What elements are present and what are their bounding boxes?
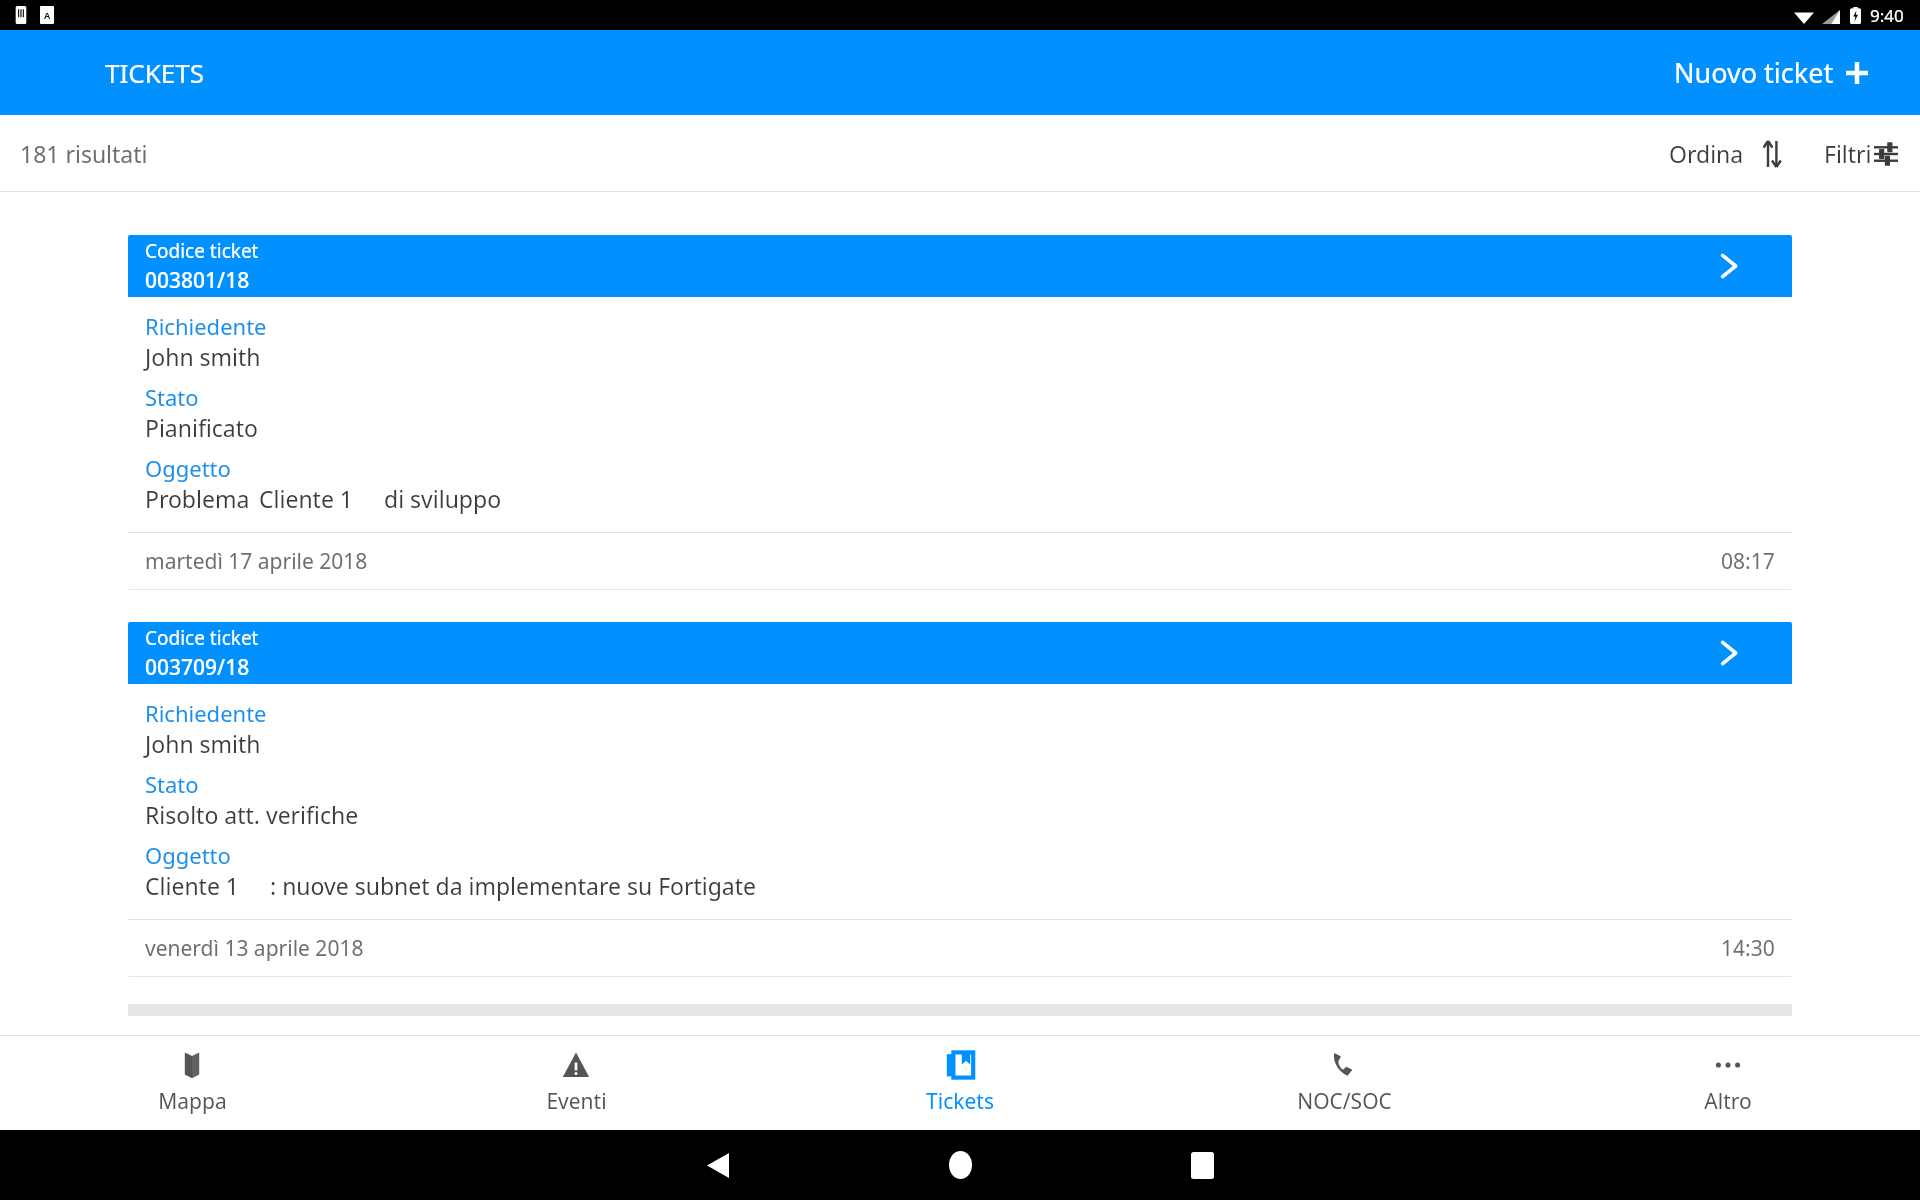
- staticText: Codice ticket: [145, 238, 259, 264]
- button[interactable]: Codice ticket: [128, 235, 1792, 590]
- staticText: Codice ticket: [145, 625, 259, 651]
- staticText: Oggetto: [145, 453, 231, 483]
- button[interactable]: Codice ticket: [128, 622, 1792, 977]
- staticText: Altro: [1704, 1087, 1752, 1116]
- other: Eventi: [561, 1050, 591, 1080]
- staticText: Tickets: [926, 1087, 994, 1116]
- button[interactable]: Tickets: [768, 1036, 1152, 1130]
- staticText: 003709/18: [145, 653, 250, 682]
- button[interactable]: Altro: [1536, 1036, 1920, 1130]
- staticText: Nuovo ticket: [1674, 54, 1834, 91]
- staticText: martedì 17 aprile 2018: [145, 547, 368, 576]
- staticText: Eventi: [546, 1087, 607, 1116]
- staticText: John smith: [145, 341, 261, 372]
- staticText: 08:17: [1721, 547, 1775, 576]
- button[interactable]: Eventi: [384, 1036, 768, 1130]
- button[interactable]: Nuovo ticket: [1674, 54, 1868, 91]
- button[interactable]: Filtri: [1818, 138, 1904, 169]
- staticText: Richiedente: [145, 698, 267, 728]
- other: Mappa: [177, 1050, 207, 1080]
- other: NOC/SOC: [1329, 1050, 1359, 1080]
- staticText: A: [44, 9, 51, 21]
- button[interactable]: Recenti: [1081, 1130, 1323, 1200]
- other: Apri ticket: [1721, 639, 1737, 667]
- staticText: John smith: [145, 728, 261, 759]
- staticText: 14:30: [1721, 934, 1775, 963]
- button[interactable]: NOC/SOC: [1152, 1036, 1536, 1130]
- staticText: Cliente 1: [259, 483, 354, 514]
- button[interactable]: Home: [839, 1130, 1081, 1200]
- button[interactable]: Mappa: [0, 1036, 384, 1130]
- staticText: TICKETS: [105, 55, 204, 90]
- staticText: Risolto att. verifiche: [145, 799, 359, 830]
- staticText: Mappa: [158, 1087, 227, 1116]
- staticText: Stato: [145, 769, 199, 799]
- staticText: Stato: [145, 382, 199, 412]
- staticText: Pianificato: [145, 412, 258, 443]
- staticText: Richiedente: [145, 311, 267, 341]
- staticText: venerdì 13 aprile 2018: [145, 934, 364, 963]
- staticText: Oggetto: [145, 840, 231, 870]
- staticText: 003801/18: [145, 266, 250, 295]
- other: Tickets: [945, 1050, 975, 1080]
- other: Apri ticket: [1721, 252, 1737, 280]
- staticText: 181 risultati: [20, 138, 148, 169]
- staticText: 9:40: [1870, 4, 1904, 27]
- button[interactable]: Ordina: [1663, 138, 1788, 169]
- staticText: Ordina: [1669, 138, 1744, 169]
- other: Altro: [1713, 1050, 1743, 1080]
- staticText: Problema: [145, 483, 250, 514]
- staticText: NOC/SOC: [1297, 1087, 1392, 1116]
- staticText: di sviluppo: [384, 483, 502, 514]
- staticText: Filtri: [1824, 138, 1872, 169]
- button[interactable]: Indietro: [597, 1130, 839, 1200]
- staticText: : nuove subnet da implementare su Fortig…: [270, 870, 757, 901]
- staticText: Cliente 1: [145, 870, 240, 901]
